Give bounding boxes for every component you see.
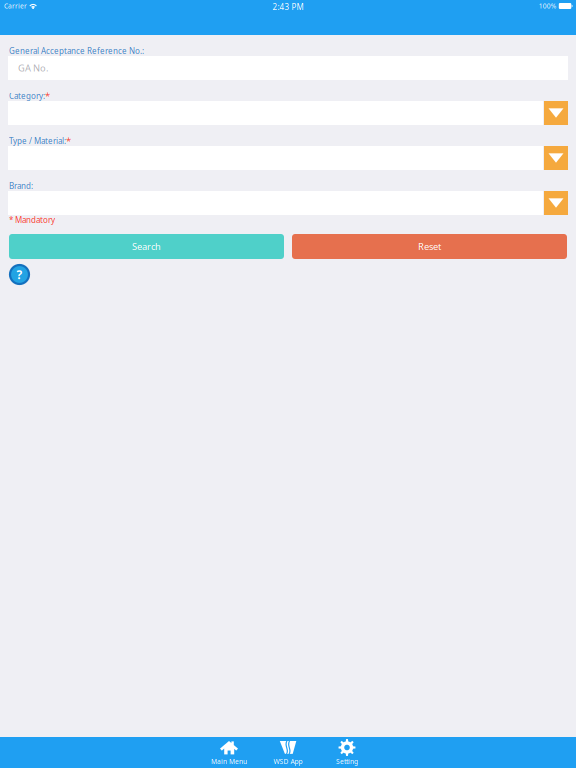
staticText: * Mandatory	[9, 215, 55, 225]
staticText: Main Menu	[211, 757, 247, 766]
staticText: 2:43 PM	[272, 2, 303, 12]
button[interactable]: Setting	[317, 737, 376, 768]
staticText: Category:	[9, 91, 45, 101]
button[interactable]: Reset	[292, 234, 567, 259]
button[interactable]: WSD App	[258, 737, 317, 768]
staticText: Carrier	[4, 2, 27, 10]
staticText: *	[66, 135, 71, 147]
staticText: Reset	[418, 240, 441, 253]
staticText: ?	[16, 266, 22, 282]
button[interactable]: Main Menu	[199, 737, 258, 768]
button[interactable]: Search	[9, 234, 284, 259]
button[interactable]: Choose Type / Material	[544, 146, 568, 170]
staticText: GA No.	[18, 62, 49, 74]
button[interactable]: Choose Category	[544, 101, 568, 125]
staticText: *	[45, 90, 50, 102]
staticText: Brand:	[9, 181, 33, 191]
staticText: WSD App	[273, 757, 302, 766]
staticText: 100%	[539, 2, 557, 10]
button[interactable]: Help	[10, 265, 29, 284]
staticText: Search	[132, 240, 161, 253]
staticText: General Acceptance Reference No.:	[9, 46, 144, 56]
staticText: Setting	[336, 757, 358, 766]
staticText: Type / Material:	[9, 136, 66, 146]
button[interactable]: Choose Brand	[544, 191, 568, 215]
